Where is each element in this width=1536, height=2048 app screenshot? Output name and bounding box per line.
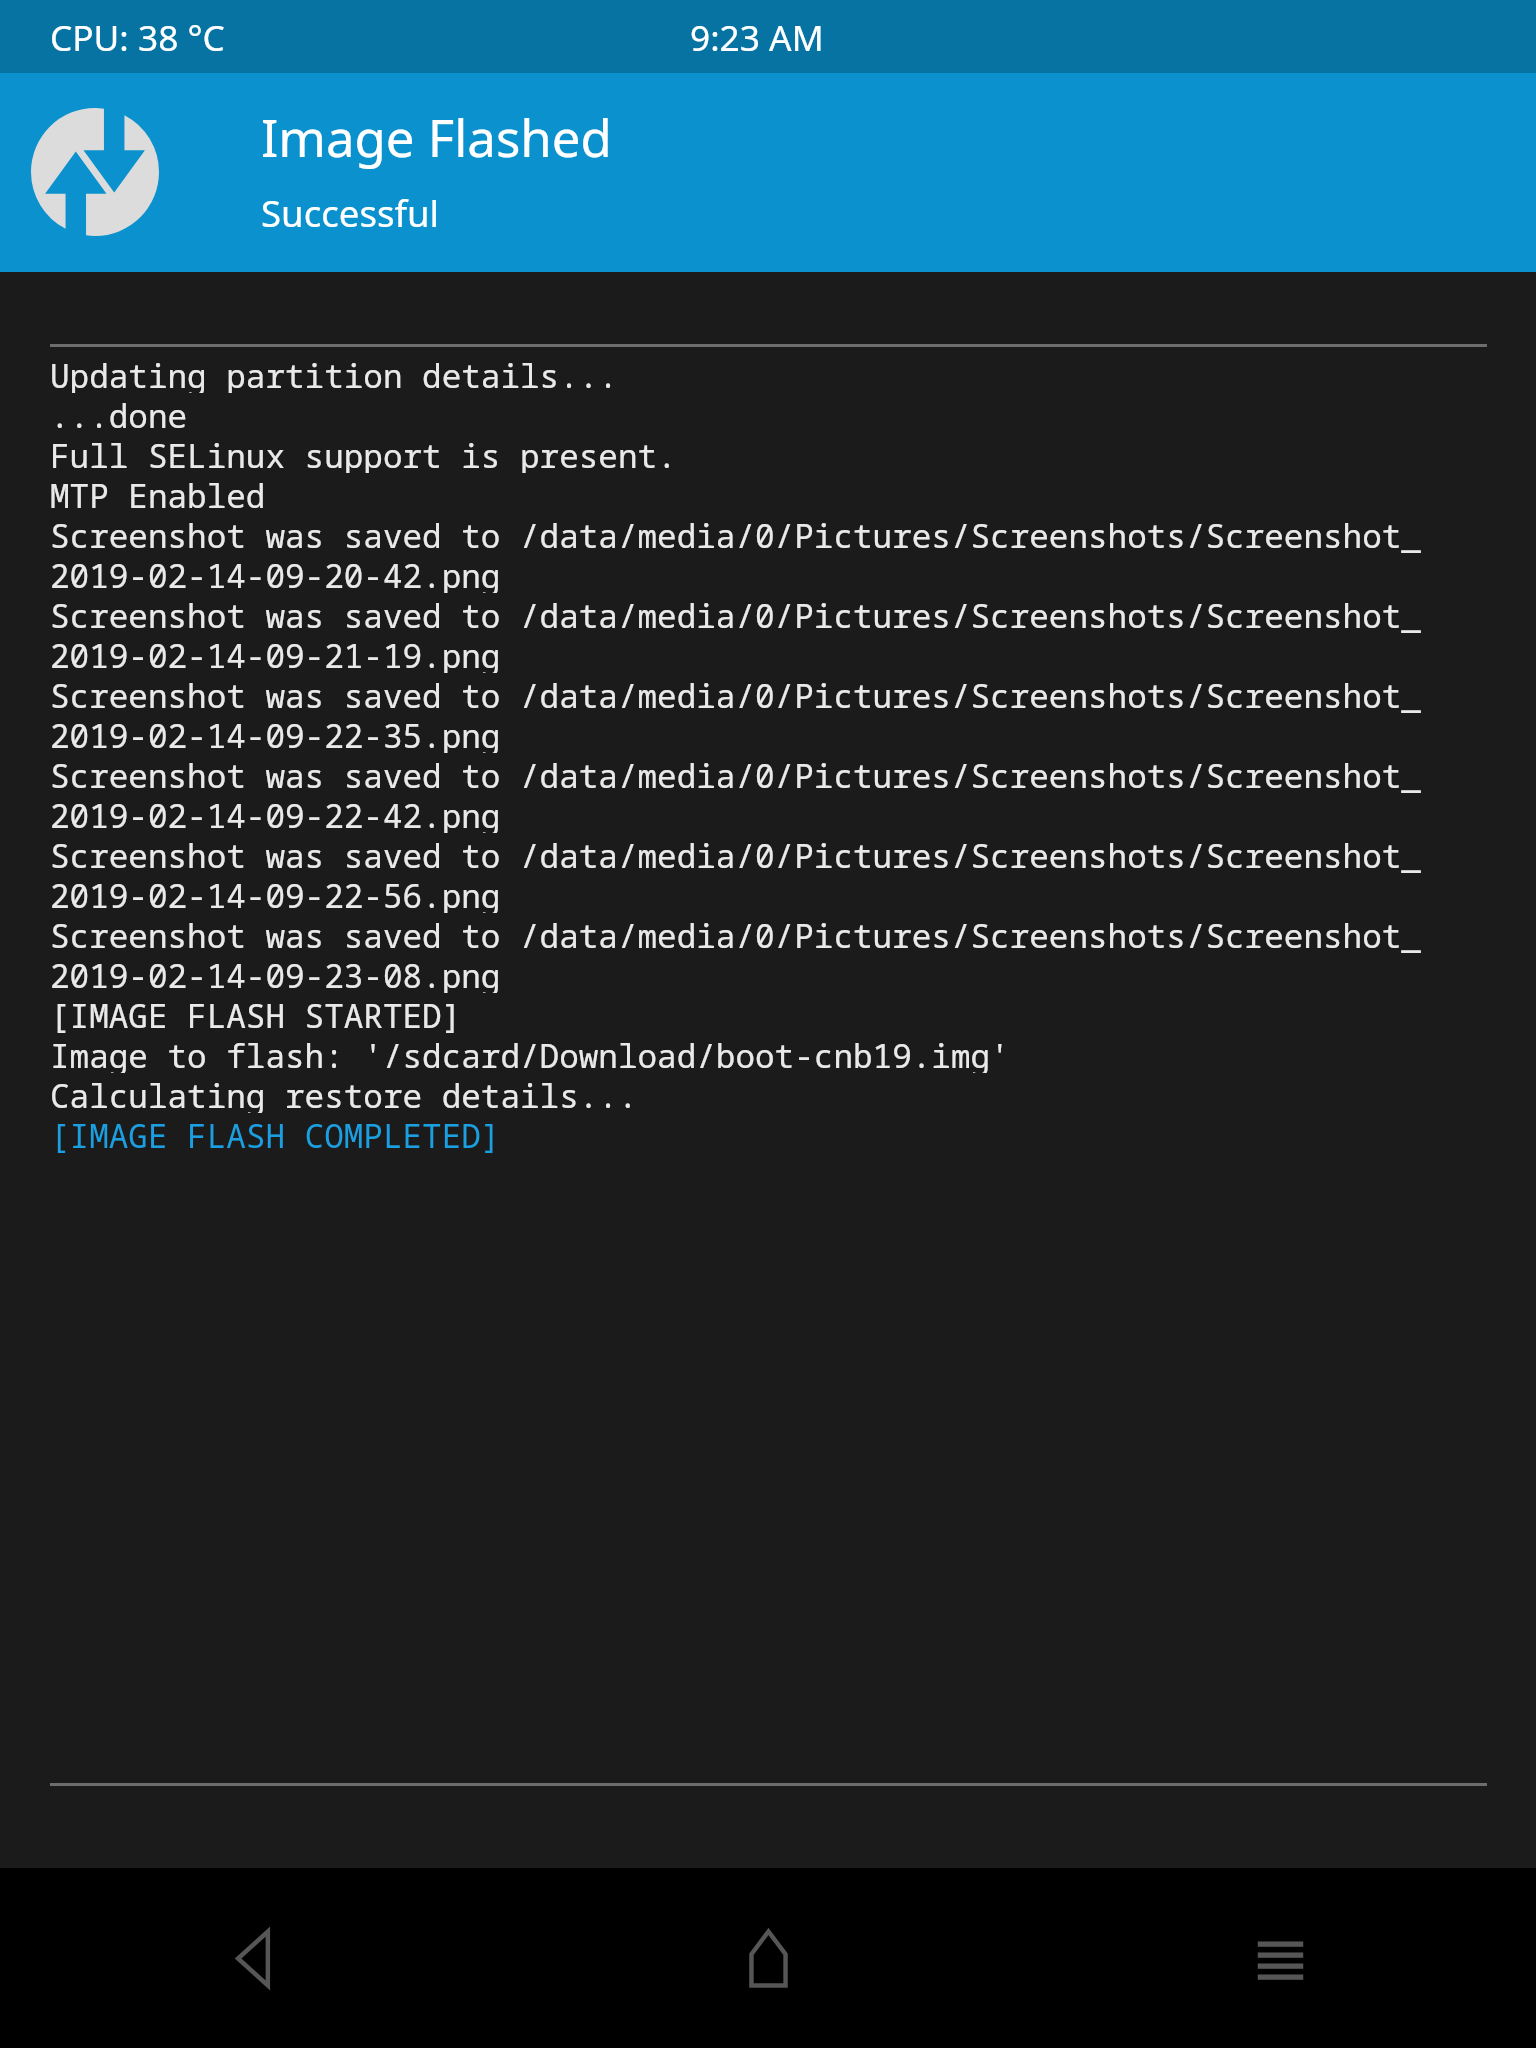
staticText: 2019-02-14-09-21-19.png	[50, 633, 501, 673]
staticText: Screenshot was saved to /data/media/0/Pi…	[50, 513, 1421, 553]
staticText: 2019-02-14-09-20-42.png	[50, 553, 501, 593]
staticText: Screenshot was saved to /data/media/0/Pi…	[50, 673, 1421, 713]
staticText: Calculating restore details...	[50, 1073, 638, 1113]
staticText: Screenshot was saved to /data/media/0/Pi…	[50, 753, 1421, 793]
staticText: Full SELinux support is present.	[50, 433, 677, 473]
staticText: 9:23 AM	[690, 13, 824, 61]
staticText: [IMAGE FLASH STARTED]	[50, 993, 462, 1033]
staticText: [IMAGE FLASH COMPLETED]	[50, 1113, 501, 1153]
staticText: 2019-02-14-09-22-35.png	[50, 713, 501, 753]
staticText: ...done	[50, 393, 188, 433]
staticText: CPU: 38 °C	[50, 13, 225, 61]
staticText: Image to flash: '/sdcard/Download/boot-c…	[50, 1033, 1010, 1073]
staticText: Screenshot was saved to /data/media/0/Pi…	[50, 913, 1421, 953]
staticText: Screenshot was saved to /data/media/0/Pi…	[50, 593, 1421, 633]
staticText: Updating partition details...	[50, 353, 618, 393]
staticText: 2019-02-14-09-23-08.png	[50, 953, 501, 993]
staticText: 2019-02-14-09-22-42.png	[50, 793, 501, 833]
staticText: Screenshot was saved to /data/media/0/Pi…	[50, 833, 1421, 873]
button[interactable]: Menu	[1024, 1868, 1536, 2048]
staticText: Image Flashed	[261, 103, 612, 172]
button[interactable]: Back	[0, 1868, 512, 2048]
button[interactable]: Home	[512, 1868, 1024, 2048]
staticText: 2019-02-14-09-22-56.png	[50, 873, 501, 913]
staticText: MTP Enabled	[50, 473, 266, 513]
staticText: Successful	[261, 188, 440, 238]
